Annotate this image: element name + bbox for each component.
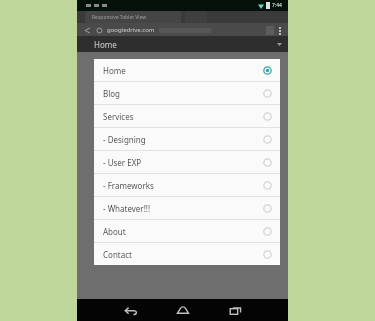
button[interactable]: - Frameworks [94,174,280,196]
button[interactable]: Blog [94,82,280,104]
staticText: - User EXP [103,157,142,168]
button[interactable]: Home [94,59,280,81]
staticText: Home [94,39,117,50]
button[interactable]: Home [166,299,200,321]
button[interactable]: Recent apps [218,299,252,321]
staticText: Services [103,111,134,122]
button[interactable]: - User EXP [94,151,280,173]
button[interactable]: Back [82,25,92,35]
staticText: - Frameworks [103,180,154,191]
staticText: About [103,226,126,237]
staticText: - Whatever!!! [103,203,151,214]
staticText: Home [103,65,126,76]
staticText: Responsive Tablet View [92,14,147,21]
staticText: 7:44 [272,2,282,9]
button[interactable]: Contact [94,243,280,265]
button[interactable]: Responsive Tablet View [85,11,181,23]
button[interactable]: Services [94,105,280,127]
button[interactable]: - Designing [94,128,280,150]
staticText: Blog [103,88,121,99]
staticText: - Designing [103,134,146,145]
button[interactable]: Menu [277,26,283,35]
button[interactable]: About [94,220,280,242]
button[interactable]: - Whatever!!! [94,197,280,219]
staticText: googledrive.com [107,26,155,34]
button[interactable]: Reload [94,25,104,35]
button[interactable]: Home [83,36,282,52]
staticText: Contact [103,249,132,260]
button[interactable]: Back [114,299,148,321]
